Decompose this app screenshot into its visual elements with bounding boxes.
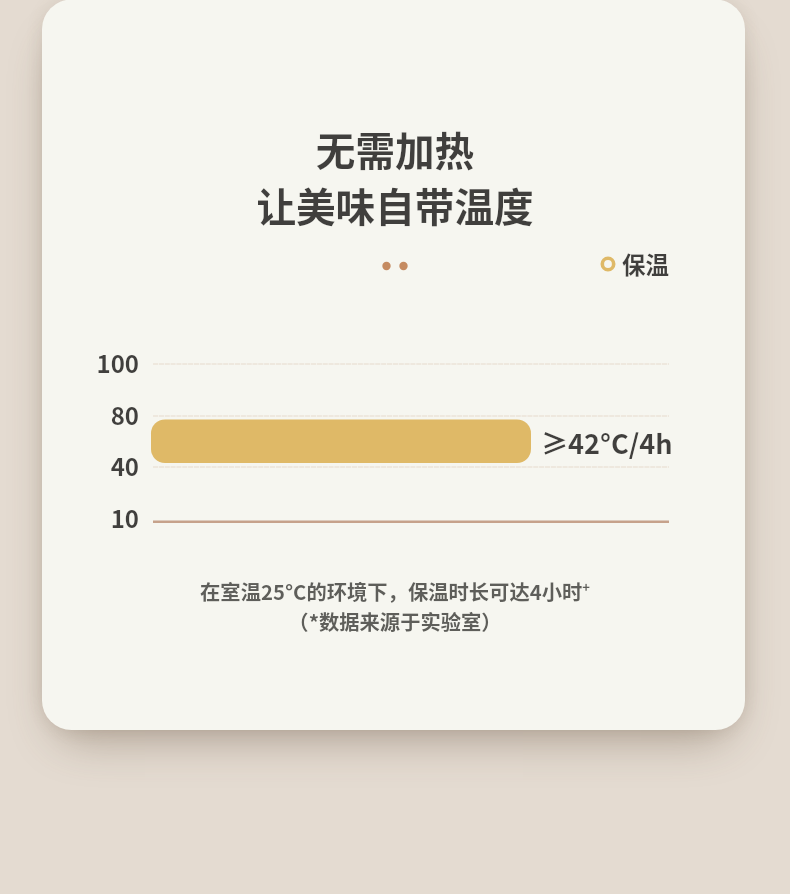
staticText: 让美味自带温度 <box>0 176 790 233</box>
staticText: 保温 <box>622 247 669 279</box>
button[interactable]: 保温 <box>598 248 665 280</box>
staticText: ≥42°C/4h <box>541 423 673 462</box>
staticText: 100 <box>96 345 139 377</box>
staticText: （*数据来源于实验室） <box>0 606 790 635</box>
staticText: 10 <box>110 500 139 532</box>
button[interactable]: Page indicator <box>376 254 414 278</box>
staticText: 40 <box>110 448 139 480</box>
staticText: 80 <box>110 397 139 429</box>
staticText: 在室温25°C的环境下，保温时长可达4小时+ <box>0 576 790 605</box>
staticText: 无需加热 <box>0 120 790 177</box>
